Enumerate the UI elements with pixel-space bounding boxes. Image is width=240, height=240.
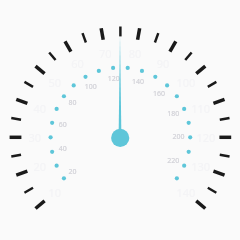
button[interactable]: Speedometer gauge (0, 0, 240, 240)
